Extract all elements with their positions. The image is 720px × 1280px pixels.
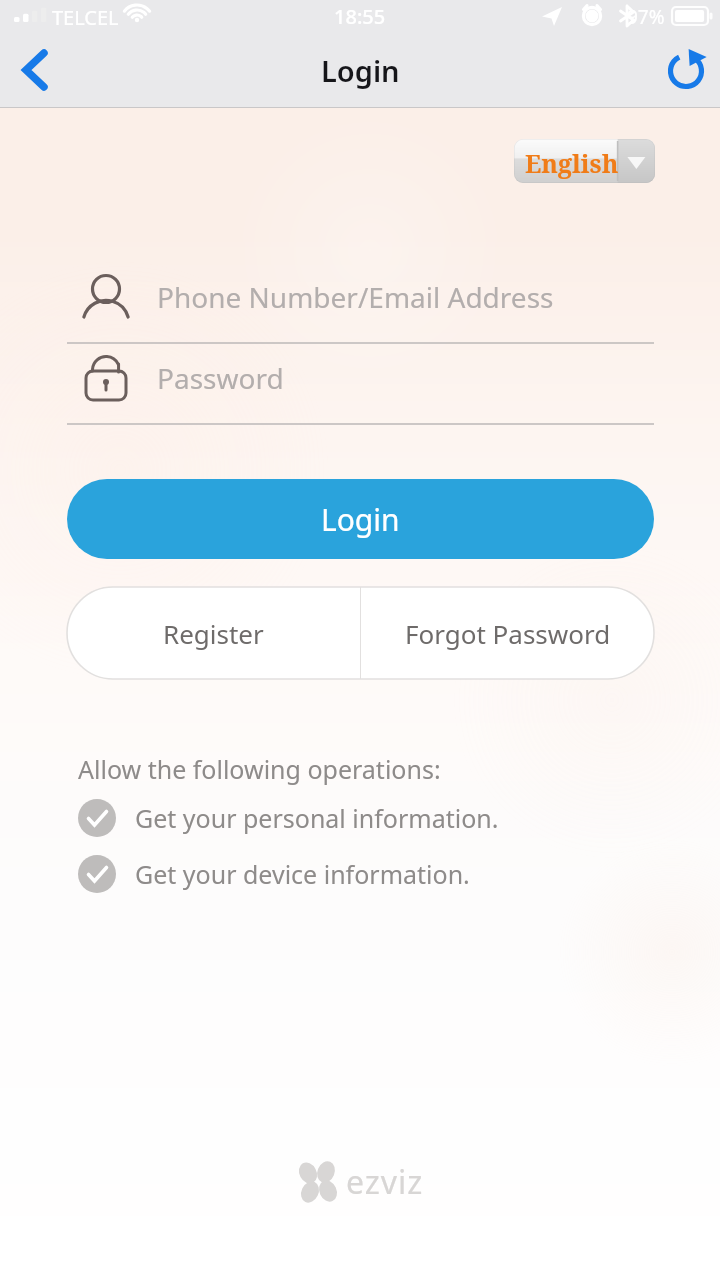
- button[interactable]: Forgot Password: [361, 587, 654, 679]
- button[interactable]: Login: [67, 479, 654, 559]
- button[interactable]: English: [514, 139, 655, 183]
- staticText: Allow the following operations:: [78, 752, 441, 786]
- staticText: Get your personal information.: [135, 801, 499, 835]
- staticText: Phone Number/Email Address: [157, 278, 554, 316]
- staticText: Login: [321, 499, 400, 540]
- staticText: TELCEL: [52, 4, 119, 31]
- staticText: ezviz: [346, 1160, 424, 1204]
- staticText: 18:55: [334, 3, 386, 30]
- staticText: Login: [321, 51, 400, 90]
- button[interactable]: Phone Number/Email Address: [67, 263, 654, 344]
- staticText: Forgot Password: [405, 616, 611, 651]
- staticText: 97%: [627, 4, 665, 30]
- button[interactable]: Password: [67, 344, 654, 425]
- staticText: Register: [163, 616, 264, 651]
- button[interactable]: Refresh: [654, 34, 720, 106]
- staticText: English: [525, 146, 619, 180]
- staticText: Password: [157, 359, 284, 397]
- button[interactable]: Register: [67, 587, 360, 679]
- staticText: Get your device information.: [135, 857, 470, 891]
- button[interactable]: Back: [0, 34, 64, 106]
